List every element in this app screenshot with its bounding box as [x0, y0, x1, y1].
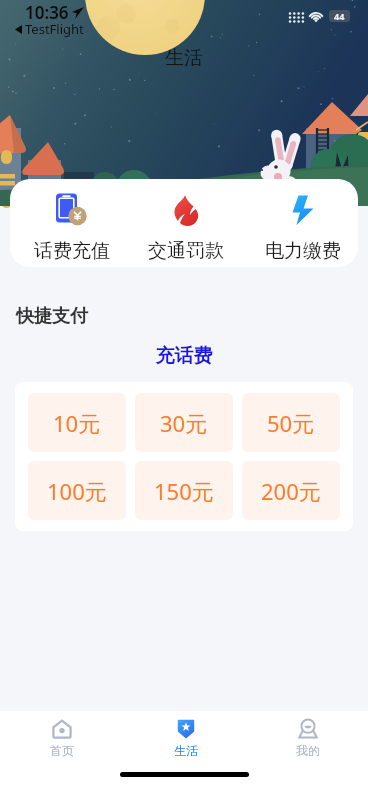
button[interactable]: 30元 — [135, 393, 233, 452]
button[interactable]: 交通罚款 — [133, 179, 238, 263]
other: 首页 — [52, 719, 72, 739]
staticText: 100元 — [47, 476, 107, 506]
staticText: 30元 — [160, 408, 208, 438]
button[interactable]: 生活 — [124, 711, 247, 763]
staticText: 50元 — [267, 408, 315, 438]
staticText: 10:36 — [25, 1, 69, 24]
staticText: 10元 — [53, 408, 101, 438]
staticText: 生活 — [0, 46, 368, 70]
staticText: 200元 — [261, 476, 321, 506]
staticText: 快捷支付 — [16, 305, 88, 328]
button[interactable]: 50元 — [242, 393, 340, 452]
other: 我的 — [298, 719, 318, 739]
staticText: 我的 — [296, 743, 320, 758]
staticText: TestFlight — [25, 20, 84, 38]
button[interactable]: 200元 — [242, 461, 340, 520]
staticText: 电力缴费 — [265, 239, 341, 263]
button[interactable]: 100元 — [28, 461, 126, 520]
other: 生活 — [176, 719, 196, 739]
staticText: 充话费 — [0, 344, 368, 368]
staticText: 44 — [334, 10, 345, 22]
staticText: 首页 — [50, 743, 74, 758]
staticText: 150元 — [154, 476, 214, 506]
button[interactable]: 10元 — [28, 393, 126, 452]
button[interactable]: 我的 — [247, 711, 368, 763]
staticText: 话费充值 — [34, 239, 110, 263]
button[interactable]: 话费充值 — [20, 179, 124, 263]
button[interactable]: 首页 — [0, 711, 124, 763]
staticText: 交通罚款 — [148, 239, 224, 263]
button[interactable]: 150元 — [135, 461, 233, 520]
button[interactable]: 电力缴费 — [251, 179, 355, 263]
staticText: 生活 — [174, 743, 198, 758]
